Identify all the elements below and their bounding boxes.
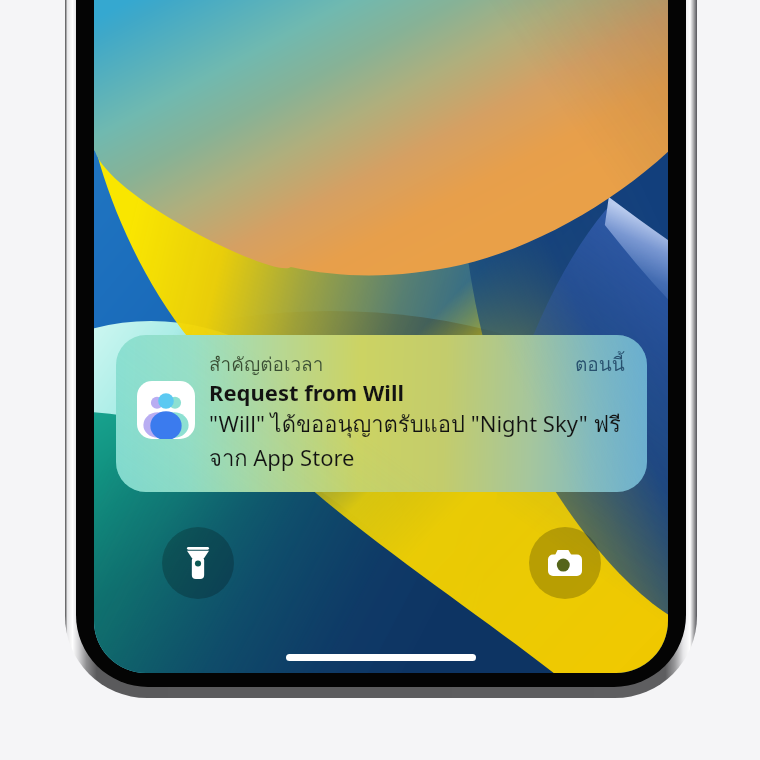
staticText: "Will" ได้ขออนุญาตรับแอป "Night Sky" ฟรี… [209,407,647,476]
button[interactable]: Camera [529,527,601,599]
button[interactable]: Flashlight [162,527,234,599]
button[interactable]: สำคัญต่อเวลา [116,335,647,492]
staticText: สำคัญต่อเวลา [209,349,324,379]
staticText: ตอนนี้ [575,349,625,379]
staticText: Request from Will [209,377,405,407]
